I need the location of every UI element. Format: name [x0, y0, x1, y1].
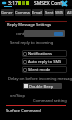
- staticText: SMS: [55, 10, 64, 15]
- staticText: Send reply to incoming: [10, 40, 54, 45]
- staticText: Sent: [45, 10, 54, 15]
- staticText: Delay on before incoming message: [8, 76, 72, 81]
- staticText: Silent mode: [28, 67, 51, 72]
- staticText: contact: [16, 31, 30, 36]
- staticText: Double Beep: [29, 84, 54, 89]
- button[interactable]: Close: [61, 0, 68, 7]
- staticText: Reply Message Settings: [7, 22, 52, 27]
- button[interactable]: Commands: [15, 9, 31, 16]
- button[interactable]: [24, 30, 65, 37]
- staticText: Commands: [15, 10, 31, 15]
- button[interactable]: Silent mode: [22, 66, 67, 73]
- staticText: Surface Command: [6, 108, 41, 113]
- staticText: 3:17: [8, 0, 18, 7]
- button[interactable]: Notifications enabled: [22, 50, 67, 57]
- button[interactable]: Auto reply to SMS: [22, 58, 67, 65]
- staticText: General: [1, 10, 14, 15]
- staticText: on/Stop: [10, 93, 25, 98]
- staticText: SMSEX Config: [34, 0, 67, 7]
- staticText: Notifications enabled: [28, 51, 67, 56]
- button[interactable]: Double Beep: [23, 83, 62, 89]
- button[interactable]: All: [65, 9, 72, 16]
- staticText: Command setting: [33, 98, 67, 103]
- staticText: Email: [32, 10, 43, 15]
- staticText: Auto reply to SMS: [28, 59, 62, 64]
- button[interactable]: Sent: [44, 9, 54, 16]
- button[interactable]: Email: [32, 9, 43, 16]
- button[interactable]: General: [1, 9, 14, 16]
- button[interactable]: SMS: [55, 9, 64, 16]
- staticText: All: [67, 10, 72, 15]
